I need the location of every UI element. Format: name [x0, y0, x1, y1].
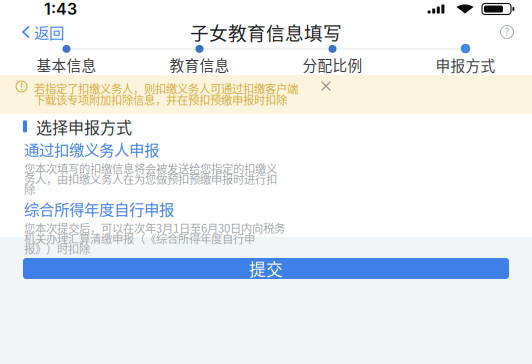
staticText: 分配比例 — [302, 54, 362, 75]
button[interactable]: 综合所得年度自行申报 — [0, 197, 532, 257]
staticText: 教育信息 — [169, 54, 229, 75]
staticText: 1:43 — [44, 0, 77, 19]
button[interactable]: 提交 — [23, 258, 509, 279]
staticText: ! — [20, 79, 23, 93]
button[interactable]: 关闭 — [309, 80, 331, 91]
staticText: 提交 — [249, 256, 283, 280]
staticText: 基本信息 — [36, 54, 96, 75]
staticText: ? — [504, 24, 509, 39]
staticText: 选择申报方式 — [36, 115, 132, 138]
button[interactable]: 帮助 — [494, 22, 532, 42]
staticText: 若指定了扣缴义务人，则扣缴义务人可通过扣缴客户端下载该专项附加扣除信息，并在预扣… — [34, 80, 298, 108]
staticText: 综合所得年度自行申报 — [24, 197, 174, 220]
button[interactable]: 通过扣缴义务人申报 — [0, 138, 532, 197]
staticText: 通过扣缴义务人申报 — [24, 138, 159, 160]
staticText: 您本次提交后，可以在次年3月1日至6月30日内向税务机关办理汇算清缴申报（《综合… — [24, 220, 285, 257]
staticText: 返回 — [34, 21, 64, 43]
staticText: 子女教育信息填写 — [190, 18, 342, 45]
button[interactable]: 返回 — [0, 22, 74, 42]
staticText: 申报方式 — [435, 54, 495, 75]
staticText: 您本次填写的扣缴信息将会被发送给您指定的扣缴义务人，由扣缴义务人在为您做预扣预缴… — [24, 160, 277, 197]
